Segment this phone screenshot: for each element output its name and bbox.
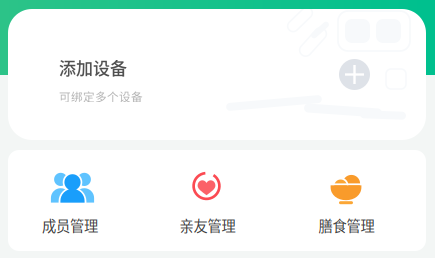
staticText: 成员管理: [42, 215, 98, 236]
staticText: 可绑定多个设备: [59, 88, 143, 105]
button[interactable]: 亲友管理: [147, 150, 287, 251]
button[interactable]: 成员管理: [8, 150, 147, 251]
staticText: 亲友管理: [179, 215, 235, 236]
staticText: 添加设备: [59, 55, 127, 80]
button[interactable]: 膳食管理: [286, 150, 426, 251]
button[interactable]: 添加设备: [8, 9, 426, 140]
staticText: 膳食管理: [318, 215, 374, 236]
